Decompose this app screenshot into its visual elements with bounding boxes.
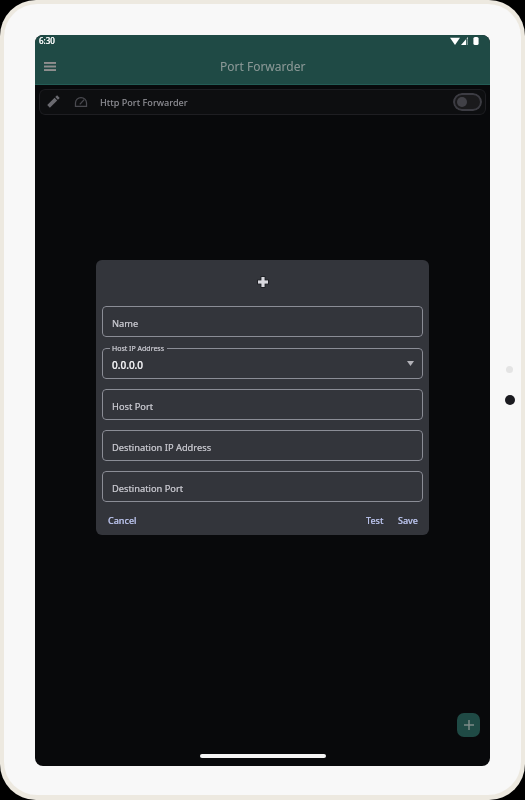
staticText: Http Port Forwarder — [100, 96, 188, 108]
button[interactable]: Add port forward — [457, 713, 480, 737]
staticText: 6:30 — [39, 35, 55, 46]
staticText: Host IP Address — [112, 344, 165, 354]
button[interactable]: Enable Http Port Forwarder — [453, 93, 482, 111]
staticText: Test — [366, 514, 384, 526]
staticText: Destination IP Address — [112, 441, 212, 454]
staticText: Port Forwarder — [220, 58, 306, 74]
button[interactable]: Name — [102, 306, 423, 337]
button[interactable]: Save — [398, 514, 419, 526]
button[interactable]: Host Port — [102, 389, 423, 420]
button[interactable]: Edit — [39, 89, 486, 115]
button[interactable]: Destination IP Address — [102, 430, 423, 461]
button[interactable]: Cancel — [108, 514, 137, 526]
staticText: Save — [398, 514, 419, 526]
staticText: Name — [112, 317, 139, 330]
button[interactable]: Test — [366, 514, 384, 526]
other: Edit — [47, 96, 59, 108]
button[interactable]: Host IP Address — [102, 348, 423, 379]
staticText: Host Port — [112, 400, 154, 413]
staticText: 0.0.0.0 — [112, 358, 144, 372]
button[interactable]: Open navigation menu — [39, 55, 61, 77]
button[interactable]: Destination Port — [102, 471, 423, 502]
staticText: Destination Port — [112, 482, 184, 495]
staticText: Cancel — [108, 514, 137, 526]
